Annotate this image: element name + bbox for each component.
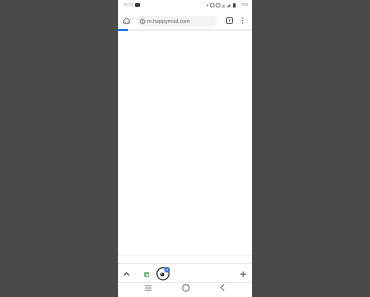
button[interactable] bbox=[122, 16, 131, 25]
button[interactable] bbox=[181, 283, 190, 292]
button[interactable] bbox=[218, 283, 227, 292]
button[interactable] bbox=[144, 272, 149, 277]
button[interactable] bbox=[121, 268, 132, 279]
button[interactable] bbox=[224, 15, 235, 26]
staticText: 70% bbox=[241, 2, 249, 7]
button[interactable] bbox=[154, 265, 170, 281]
staticText: 15:12 bbox=[123, 2, 134, 7]
staticText: m.happymod.com bbox=[147, 18, 190, 25]
button[interactable]: m.happymod.com bbox=[137, 16, 218, 26]
button[interactable] bbox=[237, 15, 248, 26]
button[interactable] bbox=[238, 269, 249, 280]
button[interactable] bbox=[144, 283, 153, 292]
